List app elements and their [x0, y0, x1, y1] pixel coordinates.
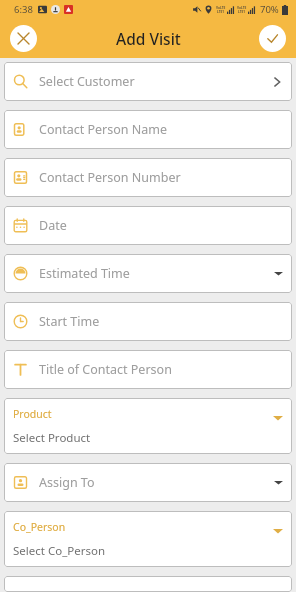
- staticText: Assign To: [39, 474, 95, 491]
- staticText: Select Customer: [39, 73, 135, 90]
- button[interactable]: Co_Person: [4, 511, 292, 567]
- button[interactable]: Estimated Time: [4, 254, 292, 293]
- button[interactable]: Close: [10, 25, 37, 52]
- staticText: Select Product: [13, 430, 91, 446]
- staticText: LTE1: [238, 10, 246, 14]
- staticText: VoLTE: [237, 6, 247, 10]
- staticText: Title of Contact Person: [39, 361, 172, 378]
- button[interactable]: Save: [259, 25, 286, 52]
- staticText: Select Co_Person: [13, 543, 106, 559]
- staticText: Estimated Time: [39, 265, 130, 282]
- button[interactable]: Assign To: [4, 463, 292, 502]
- button[interactable]: Title of Contact Person: [4, 350, 292, 389]
- button[interactable]: Start Time: [4, 302, 292, 341]
- staticText: Product: [13, 407, 52, 421]
- staticText: Add Visit: [116, 28, 181, 49]
- button[interactable]: [4, 576, 292, 592]
- staticText: Contact Person Name: [39, 121, 168, 138]
- staticText: 70%: [260, 3, 279, 16]
- button[interactable]: Product: [4, 398, 292, 454]
- staticText: Start Time: [39, 313, 100, 330]
- button[interactable]: Select Customer: [4, 62, 292, 101]
- staticText: Co_Person: [13, 520, 66, 534]
- button[interactable]: Contact Person Name: [4, 110, 292, 149]
- staticText: Contact Person Number: [39, 169, 181, 186]
- staticText: LTE1: [217, 10, 225, 14]
- button[interactable]: Contact Person Number: [4, 158, 292, 197]
- staticText: VoLTE: [216, 6, 226, 10]
- staticText: 6:38: [14, 3, 33, 16]
- staticText: Date: [39, 217, 67, 234]
- button[interactable]: Date: [4, 206, 292, 245]
